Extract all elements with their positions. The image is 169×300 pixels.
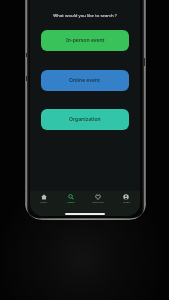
button[interactable]: Favourites (84, 190, 112, 204)
button[interactable]: In-person event (41, 30, 129, 51)
button[interactable]: Organization (41, 109, 129, 130)
staticText: Home (40, 201, 47, 204)
staticText: Search (67, 201, 75, 204)
staticText: Profile (123, 201, 130, 204)
staticText: Favourites (92, 201, 104, 204)
button[interactable]: Search (57, 190, 84, 204)
staticText: Organization (69, 116, 101, 123)
button[interactable]: Profile (112, 190, 140, 204)
staticText: In-person event (66, 37, 105, 44)
staticText: Online event (69, 77, 101, 84)
button[interactable]: Home (30, 190, 57, 204)
button[interactable]: Online event (41, 70, 129, 91)
staticText: What would you like to search ? (30, 12, 140, 18)
